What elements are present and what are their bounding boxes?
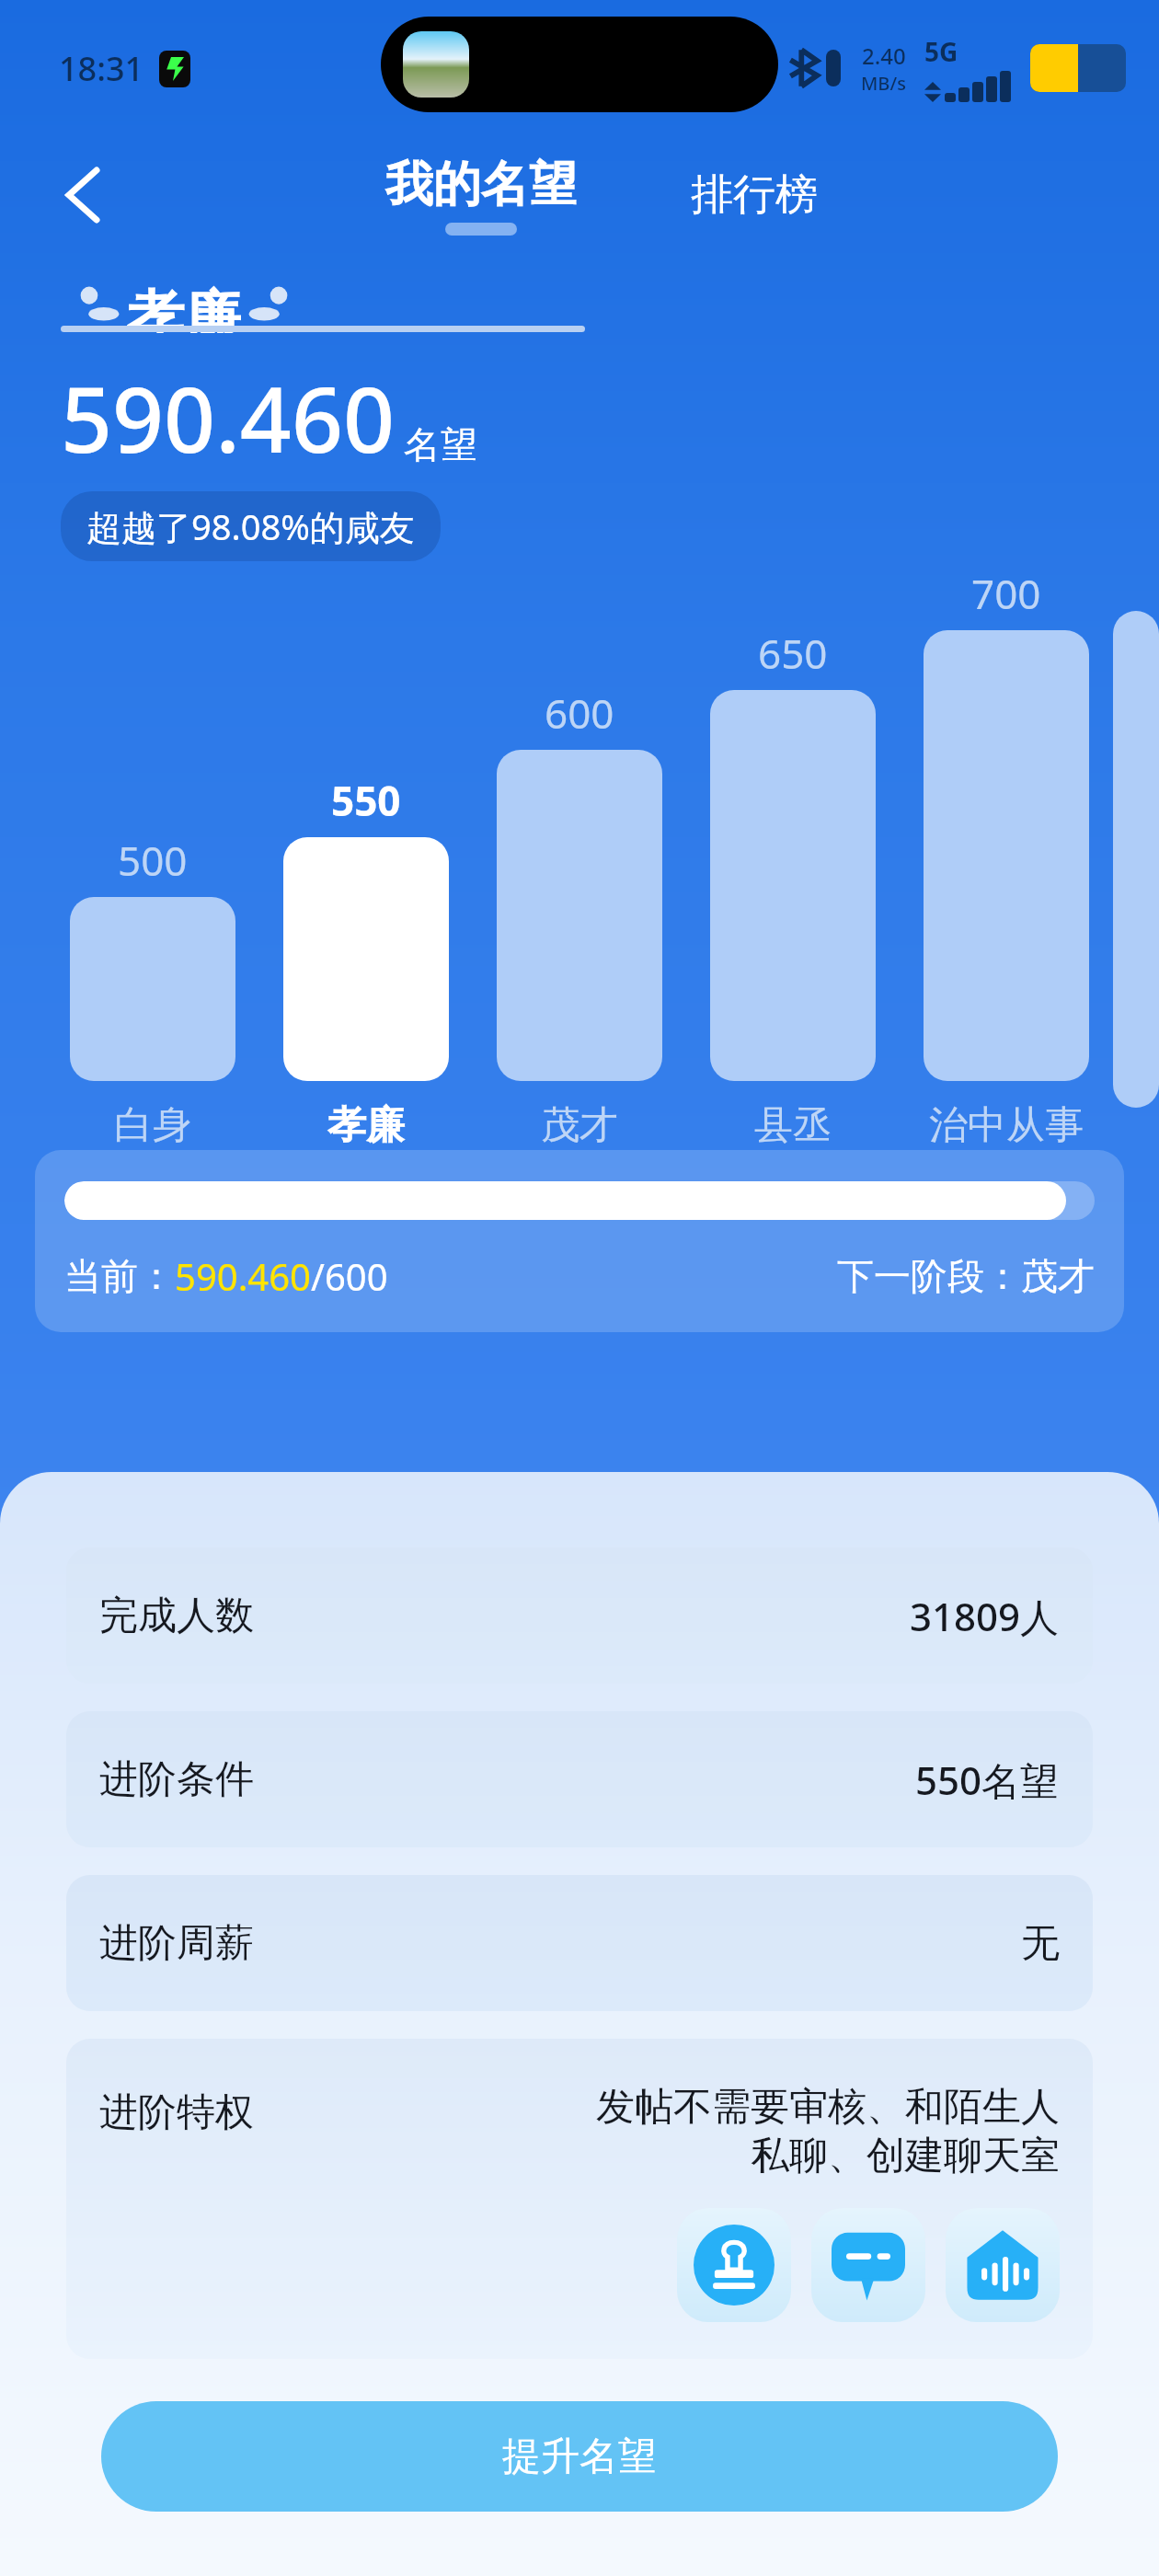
staticText: 名望 — [404, 421, 477, 467]
button[interactable]: 进阶特权 — [66, 2039, 1093, 2359]
staticText: 18:31 — [59, 46, 144, 91]
staticText: 600 — [545, 685, 614, 741]
button[interactable]: 完成人数 — [66, 1547, 1093, 1684]
staticText: 590.460 — [175, 1251, 311, 1301]
staticText: 5G — [924, 34, 958, 69]
staticText: 650 — [758, 626, 828, 681]
staticText: 超越了98.08%的咸友 — [86, 502, 415, 550]
button[interactable]: 进阶条件 — [66, 1711, 1093, 1847]
button[interactable]: 我的名望 — [373, 155, 590, 236]
button[interactable]: 700 — [900, 566, 1113, 1150]
button[interactable]: 排行榜 — [678, 161, 831, 229]
button[interactable]: 500 — [46, 833, 259, 1150]
button[interactable]: 550 — [259, 773, 473, 1150]
button[interactable]: Back — [39, 151, 127, 239]
staticText: 孝廉 — [127, 282, 241, 333]
staticText: 550 — [331, 773, 401, 828]
button[interactable]: Private chat — [811, 2208, 925, 2322]
staticText: 提升名望 — [502, 2432, 657, 2481]
staticText: 排行榜 — [691, 168, 818, 222]
button[interactable]: 提升名望 — [101, 2401, 1058, 2512]
button[interactable]: 600 — [473, 685, 686, 1150]
button[interactable]: 650 — [686, 626, 900, 1150]
staticText: 进阶特权 — [99, 2088, 254, 2137]
staticText: 700 — [971, 566, 1041, 621]
staticText: MB/s — [861, 71, 906, 96]
staticText: 孝廉 — [327, 1101, 405, 1150]
staticText: 31809人 — [910, 1590, 1060, 1642]
staticText: 当前： — [64, 1253, 175, 1299]
staticText: 县丞 — [754, 1101, 832, 1150]
staticText: 发帖不需要审核、和陌生人 — [596, 2083, 1060, 2132]
button[interactable]: Create chat room — [946, 2208, 1060, 2322]
staticText: 治中从事 — [929, 1101, 1084, 1150]
staticText: 完成人数 — [99, 1592, 254, 1640]
staticText: 茂才 — [541, 1101, 618, 1150]
staticText: 2.40 — [862, 40, 906, 71]
button[interactable]: Post without review — [677, 2208, 791, 2322]
button[interactable]: 进阶周薪 — [66, 1875, 1093, 2011]
staticText: /600 — [311, 1251, 388, 1301]
staticText: 私聊、创建聊天室 — [751, 2132, 1060, 2180]
staticText: 无 — [1021, 1919, 1060, 1968]
staticText: 下一阶段：茂才 — [837, 1253, 1095, 1299]
staticText: 白身 — [114, 1101, 191, 1150]
staticText: 我的名望 — [385, 155, 577, 215]
staticText: 590.460 — [61, 356, 395, 478]
staticText: 500 — [118, 833, 188, 888]
staticText: 550名望 — [915, 1754, 1060, 1806]
staticText: 进阶条件 — [99, 1755, 254, 1804]
staticText: 进阶周薪 — [99, 1919, 254, 1968]
